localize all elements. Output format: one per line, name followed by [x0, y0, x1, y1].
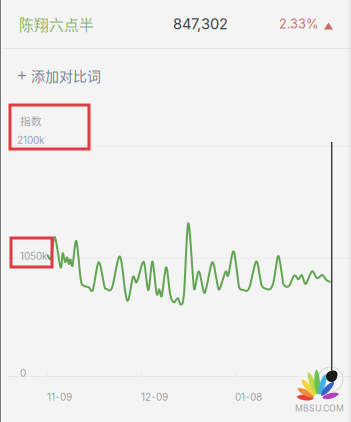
staticText: 陈翔六点半	[19, 13, 94, 35]
staticText: 指数	[20, 113, 42, 128]
staticText: 2.33%	[279, 16, 318, 32]
staticText: 添加对比词	[31, 65, 101, 86]
staticText: 01-08	[235, 391, 262, 403]
staticText: 1050k	[20, 250, 47, 262]
staticText: 0	[20, 367, 26, 379]
staticText: 12-09	[141, 391, 168, 403]
staticText: MBSU.COM	[295, 403, 344, 413]
staticText: 847,302	[173, 15, 228, 33]
staticText: 2100k	[17, 134, 44, 146]
staticText: 11-09	[47, 391, 72, 403]
button[interactable]: 添加对比词	[0, 49, 351, 102]
